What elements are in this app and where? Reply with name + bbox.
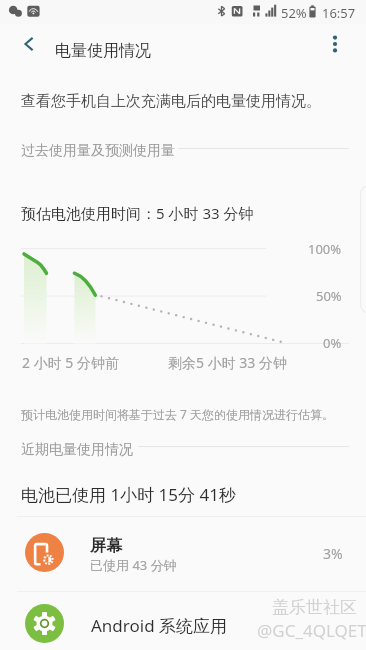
staticText: 查看您手机自上次充满电后的电量使用情况。 <box>21 92 321 111</box>
staticText: 剩余5 小时 33 分钟 <box>168 353 287 372</box>
staticText: 100% <box>308 240 342 258</box>
staticText: 预计电池使用时间将基于过去 7 天您的使用情况进行估算。 <box>21 406 335 422</box>
staticText: 52% <box>281 4 307 22</box>
staticText: 已使用 43 分钟 <box>90 556 177 574</box>
staticText: 3% <box>323 544 343 563</box>
button[interactable]: Android 系统应用 <box>0 592 366 650</box>
staticText: 近期电量使用情况 <box>21 441 133 459</box>
staticText: Android 系统应用 <box>91 614 228 637</box>
staticText: 0% <box>323 334 342 352</box>
button[interactable]: 屏幕 <box>0 517 366 591</box>
staticText: 50% <box>316 287 342 305</box>
staticText: 电池已使用 1小时 15分 41秒 <box>21 483 236 506</box>
staticText: @GC_4QLQETV6 <box>257 619 366 642</box>
button[interactable]: Back <box>12 26 46 62</box>
staticText: 电量使用情况 <box>55 41 151 61</box>
button[interactable]: More options <box>320 26 350 62</box>
staticText: 过去使用量及预测使用量 <box>21 142 175 160</box>
staticText: 2 小时 5 分钟前 <box>22 353 119 372</box>
staticText: 16:57 <box>322 4 356 22</box>
staticText: 盖乐世社区 <box>272 597 357 618</box>
staticText: 预估电池使用时间：5 小时 33 分钟 <box>21 203 254 223</box>
staticText: 屏幕 <box>90 536 122 556</box>
